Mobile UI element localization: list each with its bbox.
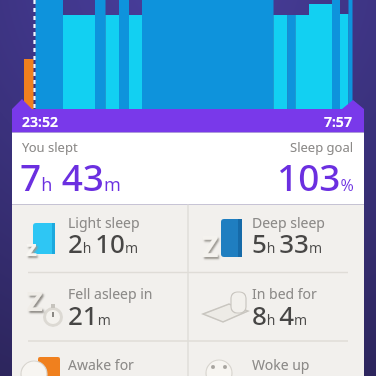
staticText: z	[26, 232, 37, 262]
staticText: 5h 33m	[252, 225, 322, 260]
button[interactable]	[188, 341, 364, 376]
staticText: 23:52	[22, 112, 58, 131]
staticText: Fell asleep in	[68, 284, 153, 303]
button[interactable]	[188, 272, 364, 340]
staticText: Sleep goal	[290, 138, 354, 156]
staticText: Z	[202, 227, 219, 265]
staticText: In bed for	[252, 284, 317, 303]
staticText: 8h 4m	[252, 297, 308, 332]
staticText: Woke up	[252, 355, 310, 374]
staticText: 21m	[68, 297, 111, 332]
button[interactable]	[12, 132, 364, 204]
staticText: 2h 10m	[68, 225, 138, 260]
staticText: Z	[27, 282, 43, 319]
staticText: Light sleep	[68, 213, 140, 232]
staticText: Awake for	[68, 355, 134, 374]
staticText: You slept	[22, 138, 78, 156]
button[interactable]	[12, 272, 188, 340]
staticText: Deep sleep	[252, 213, 325, 232]
button[interactable]	[12, 341, 188, 376]
staticText: 7h 43m	[20, 151, 121, 201]
staticText: 103%	[277, 151, 354, 201]
staticText: 7:57	[324, 112, 352, 131]
button[interactable]	[12, 204, 188, 272]
button[interactable]	[188, 204, 364, 272]
